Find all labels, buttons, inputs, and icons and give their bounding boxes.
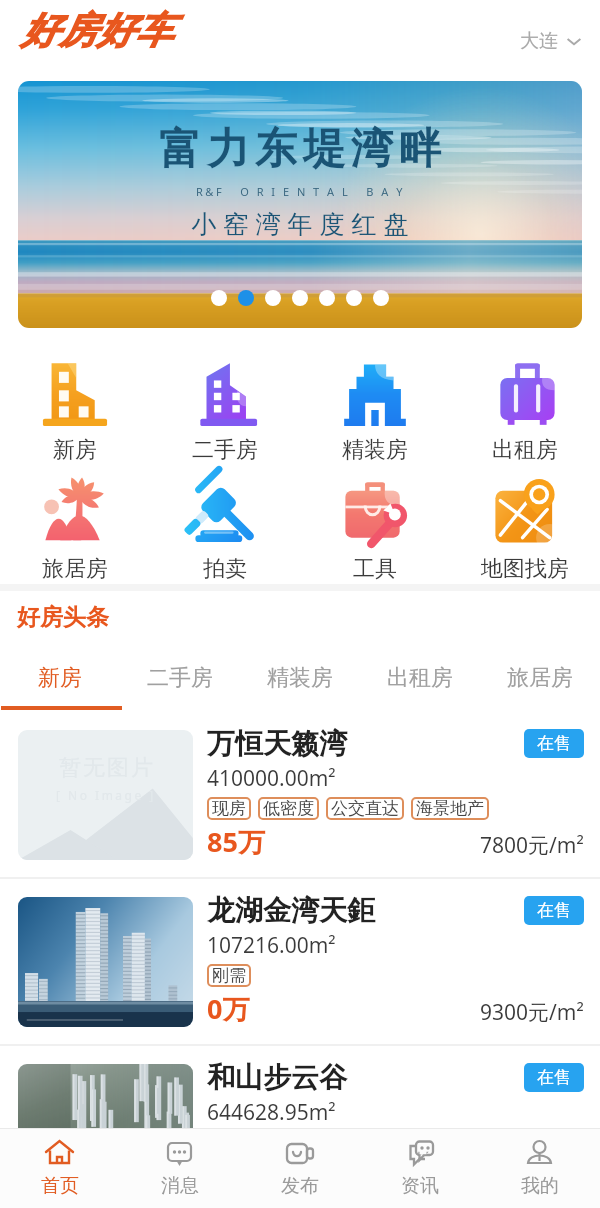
staticText: 公交直达 (331, 798, 399, 819)
staticText: 富力东堤湾畔 (156, 123, 444, 176)
button[interactable]: 二手房 (120, 644, 240, 712)
staticText: 好房好车 (21, 7, 173, 54)
staticText: [ No Image ] (56, 787, 156, 803)
button[interactable]: 大连 (520, 29, 582, 53)
button[interactable]: 旅居房 (480, 644, 600, 712)
staticText: 和山步云谷 (207, 1060, 524, 1095)
staticText: 新房 (38, 664, 82, 692)
button[interactable]: 好房好车 (21, 7, 173, 54)
staticText: 低密度 (263, 798, 314, 819)
button[interactable]: 富力东堤湾畔 (18, 81, 582, 328)
staticText: 小窑湾年度红盘 (188, 209, 412, 240)
button[interactable]: 旅居房 (0, 465, 150, 584)
staticText: 出租房 (387, 664, 453, 692)
staticText: 85万 (207, 823, 265, 860)
staticText: 在售 (537, 1067, 571, 1088)
staticText: 好房头条 (17, 603, 109, 632)
staticText: 在售 (537, 900, 571, 921)
staticText: 旅居房 (42, 555, 108, 583)
staticText: 精装房 (267, 664, 333, 692)
staticText: 暂无图片 (58, 754, 154, 782)
staticText: 现房 (212, 798, 246, 819)
staticText: 旅居房 (507, 664, 573, 692)
staticText: 新房 (53, 436, 97, 464)
button[interactable]: 新房 (0, 346, 150, 465)
button[interactable]: 在售 (524, 729, 584, 758)
button[interactable]: 暂无图片 (0, 712, 600, 877)
staticText: 410000.00m² (207, 764, 336, 793)
button[interactable]: 新房 (0, 644, 120, 712)
staticText: 首页 (41, 1174, 79, 1198)
button[interactable]: 精装房 (240, 644, 360, 712)
staticText: 工具 (353, 555, 397, 583)
staticText: 大连 (520, 29, 558, 53)
button[interactable]: 龙湖金湾天鉅 (0, 879, 600, 1044)
staticText: 精装房 (342, 436, 408, 464)
staticText: 出租房 (492, 436, 558, 464)
staticText: 二手房 (147, 664, 213, 692)
staticText: 7800元/m² (480, 831, 584, 860)
staticText: 拍卖 (203, 555, 247, 583)
staticText: R&F O R I E N T A L B A Y (196, 184, 405, 199)
staticText: 644628.95m² (207, 1098, 336, 1127)
staticText: 地图找房 (481, 555, 569, 583)
staticText: 发布 (281, 1174, 319, 1198)
button[interactable]: 我的 (480, 1129, 600, 1208)
button[interactable]: 拍卖 (150, 465, 300, 584)
staticText: 刚需 (212, 965, 246, 986)
staticText: 龙湖金湾天鉅 (207, 893, 524, 928)
staticText: 海景地产 (416, 798, 484, 819)
staticText: 消息 (161, 1174, 199, 1198)
staticText: 我的 (521, 1174, 559, 1198)
button[interactable]: 地图找房 (450, 465, 600, 584)
staticText: 107216.00m² (207, 931, 336, 960)
button[interactable]: 出租房 (450, 346, 600, 465)
button[interactable]: 二手房 (150, 346, 300, 465)
staticText: 在售 (537, 733, 571, 754)
button[interactable]: 资讯 (360, 1129, 480, 1208)
button[interactable]: 发布 (240, 1129, 360, 1208)
button[interactable]: 首页 (0, 1129, 120, 1208)
button[interactable]: 工具 (300, 465, 450, 584)
staticText: 0万 (207, 990, 250, 1027)
button[interactable]: 消息 (120, 1129, 240, 1208)
staticText: 万恒天籁湾 (207, 726, 524, 761)
staticText: 资讯 (401, 1174, 439, 1198)
button[interactable]: 精装房 (300, 346, 450, 465)
button[interactable]: 出租房 (360, 644, 480, 712)
button[interactable]: 在售 (524, 896, 584, 925)
button[interactable]: 和山步云谷 (0, 1046, 600, 1208)
staticText: 9300元/m² (480, 998, 584, 1027)
button[interactable]: 在售 (524, 1063, 584, 1092)
staticText: 二手房 (192, 436, 258, 464)
